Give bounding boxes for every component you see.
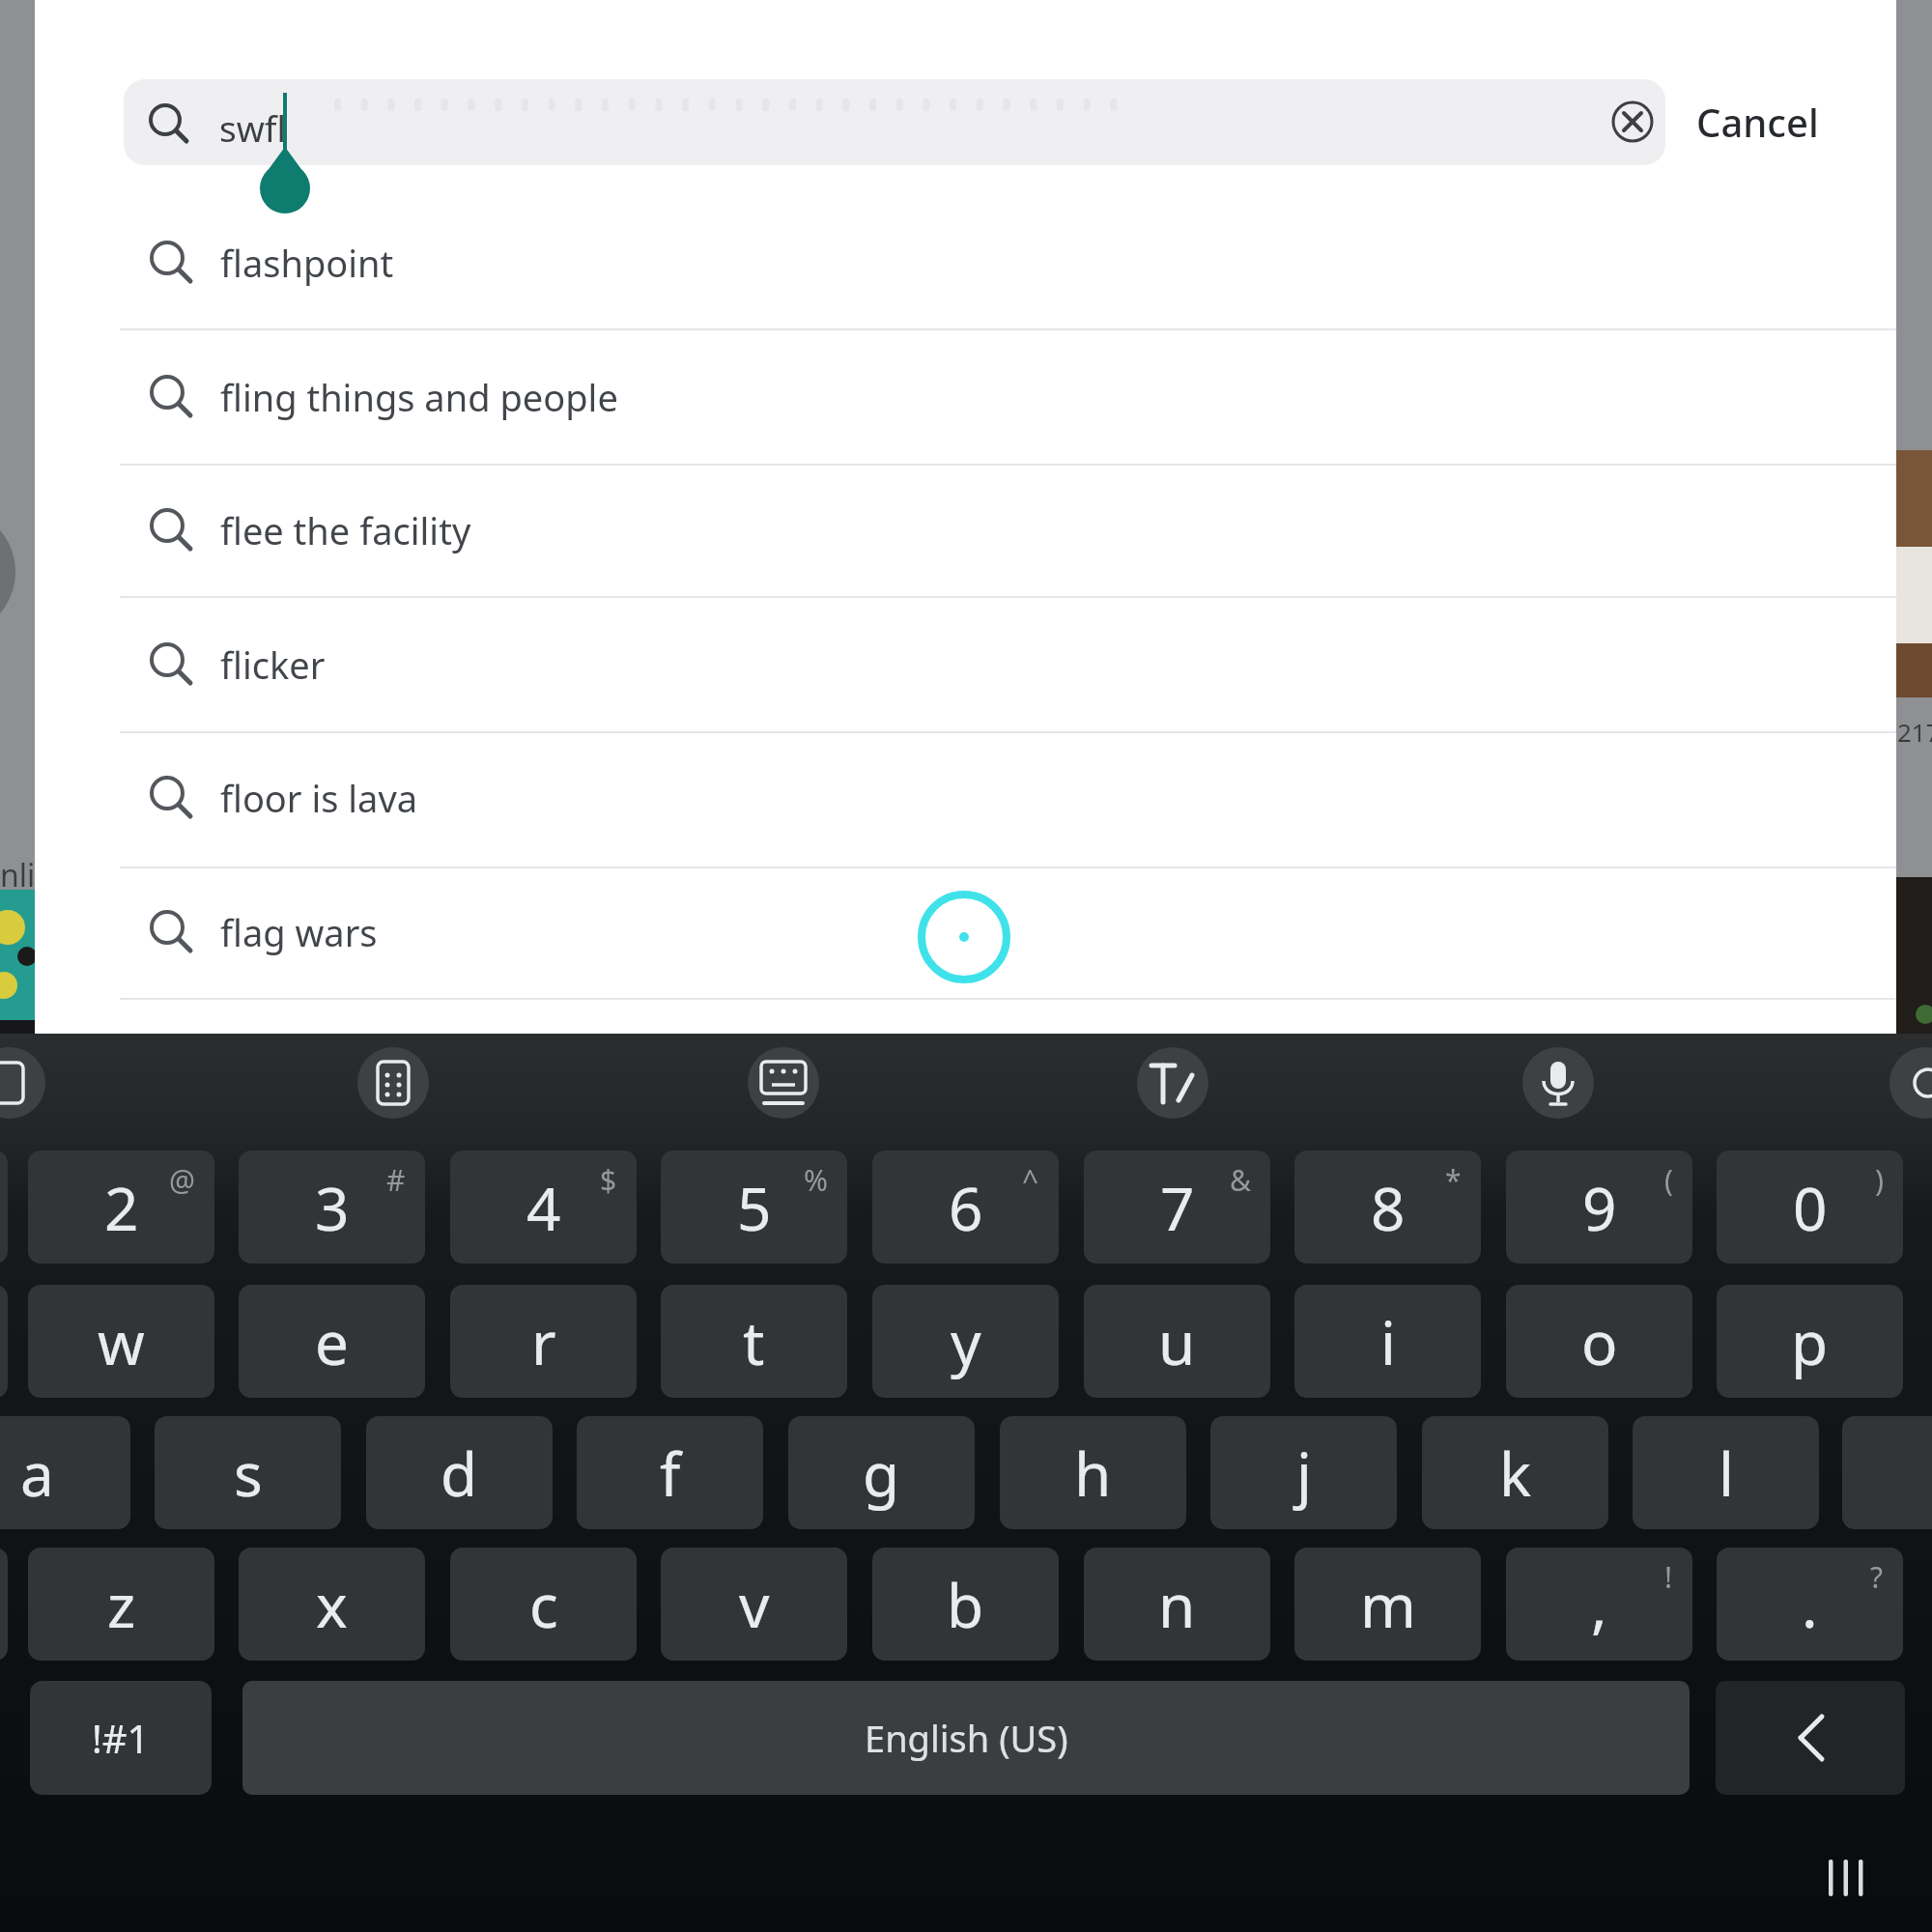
button[interactable]: l: [1633, 1416, 1819, 1529]
staticText: ): [1875, 1160, 1884, 1200]
staticText: h: [1074, 1433, 1112, 1514]
staticText: 8: [1371, 1167, 1406, 1248]
button[interactable]: 7: [1084, 1151, 1270, 1264]
button[interactable]: 8: [1294, 1151, 1481, 1264]
button[interactable]: g: [788, 1416, 975, 1529]
button[interactable]: j: [1210, 1416, 1397, 1529]
button[interactable]: r: [450, 1285, 637, 1398]
staticText: 9: [1582, 1167, 1617, 1248]
button[interactable]: e: [239, 1285, 425, 1398]
staticText: fling things and people: [220, 372, 618, 422]
button[interactable]: 6: [872, 1151, 1059, 1264]
button[interactable]: s: [155, 1416, 341, 1529]
button[interactable]: 5: [661, 1151, 847, 1264]
button[interactable]: c: [450, 1548, 637, 1661]
button[interactable]: [0, 1548, 8, 1661]
button[interactable]: floor is lava: [141, 731, 1870, 865]
staticText: l: [1719, 1433, 1734, 1514]
staticText: z: [107, 1564, 136, 1645]
staticText: ^: [1022, 1160, 1039, 1200]
button[interactable]: [1842, 1416, 1932, 1529]
staticText: ,: [1591, 1564, 1607, 1645]
staticText: p: [1791, 1301, 1829, 1382]
button[interactable]: 3: [239, 1151, 425, 1264]
button[interactable]: w: [28, 1285, 214, 1398]
staticText: s: [234, 1433, 263, 1514]
staticText: #: [386, 1160, 406, 1200]
staticText: Cancel: [1696, 96, 1819, 148]
button[interactable]: p: [1717, 1285, 1903, 1398]
staticText: swfl: [219, 103, 287, 152]
staticText: d: [440, 1433, 478, 1514]
button[interactable]: English (US): [242, 1681, 1690, 1795]
staticText: e: [315, 1301, 349, 1382]
staticText: @: [169, 1160, 195, 1200]
button[interactable]: d: [366, 1416, 553, 1529]
staticText: j: [1296, 1433, 1312, 1514]
staticText: (: [1664, 1160, 1673, 1200]
button[interactable]: 4: [450, 1151, 637, 1264]
button[interactable]: [748, 1047, 819, 1119]
staticText: a: [20, 1433, 54, 1514]
button[interactable]: z: [28, 1548, 214, 1661]
button[interactable]: n: [1084, 1548, 1270, 1661]
staticText: .: [1802, 1564, 1818, 1645]
button[interactable]: 2: [28, 1151, 214, 1264]
button[interactable]: 9: [1506, 1151, 1692, 1264]
button[interactable]: Cancel: [1675, 93, 1839, 151]
button[interactable]: m: [1294, 1548, 1481, 1661]
button[interactable]: [1522, 1047, 1594, 1119]
button[interactable]: [1604, 93, 1662, 151]
staticText: 217: [1897, 715, 1932, 749]
button[interactable]: o: [1506, 1285, 1692, 1398]
button[interactable]: i: [1294, 1285, 1481, 1398]
staticText: nlig: [0, 854, 35, 896]
staticText: w: [98, 1301, 145, 1382]
button[interactable]: flee the facility: [141, 464, 1870, 597]
button[interactable]: u: [1084, 1285, 1270, 1398]
staticText: c: [529, 1564, 558, 1645]
button[interactable]: k: [1422, 1416, 1608, 1529]
button[interactable]: a: [0, 1416, 130, 1529]
button[interactable]: [0, 1285, 8, 1398]
button[interactable]: x: [239, 1548, 425, 1661]
staticText: o: [1581, 1301, 1618, 1382]
staticText: !#1: [92, 1712, 150, 1764]
staticText: 7: [1160, 1167, 1195, 1248]
staticText: k: [1499, 1433, 1532, 1514]
button[interactable]: !#1: [30, 1681, 212, 1795]
button[interactable]: [1137, 1047, 1208, 1119]
staticText: g: [863, 1433, 900, 1514]
staticText: !: [1664, 1557, 1673, 1597]
button[interactable]: flashpoint: [141, 196, 1870, 329]
staticText: flee the facility: [220, 505, 471, 555]
staticText: t: [743, 1301, 765, 1382]
staticText: 0: [1793, 1167, 1828, 1248]
staticText: x: [316, 1564, 348, 1645]
staticText: v: [739, 1564, 770, 1645]
button[interactable]: h: [1000, 1416, 1186, 1529]
button[interactable]: 0: [1717, 1151, 1903, 1264]
button[interactable]: .: [1717, 1548, 1903, 1661]
staticText: b: [947, 1564, 984, 1645]
button[interactable]: flicker: [141, 598, 1870, 731]
button[interactable]: [0, 1151, 8, 1264]
staticText: flag wars: [220, 907, 378, 957]
staticText: $: [600, 1160, 617, 1200]
button[interactable]: [1716, 1681, 1905, 1795]
staticText: 2: [104, 1167, 139, 1248]
button[interactable]: fling things and people: [141, 330, 1870, 464]
staticText: 3: [315, 1167, 350, 1248]
staticText: flicker: [220, 639, 326, 690]
button[interactable]: y: [872, 1285, 1059, 1398]
button[interactable]: flag wars: [141, 866, 1870, 999]
button[interactable]: ,: [1506, 1548, 1692, 1661]
staticText: m: [1360, 1564, 1416, 1645]
button[interactable]: b: [872, 1548, 1059, 1661]
staticText: u: [1158, 1301, 1196, 1382]
button[interactable]: f: [577, 1416, 763, 1529]
button[interactable]: v: [661, 1548, 847, 1661]
button[interactable]: t: [661, 1285, 847, 1398]
button[interactable]: [357, 1047, 429, 1119]
button[interactable]: swfl: [124, 79, 1665, 165]
